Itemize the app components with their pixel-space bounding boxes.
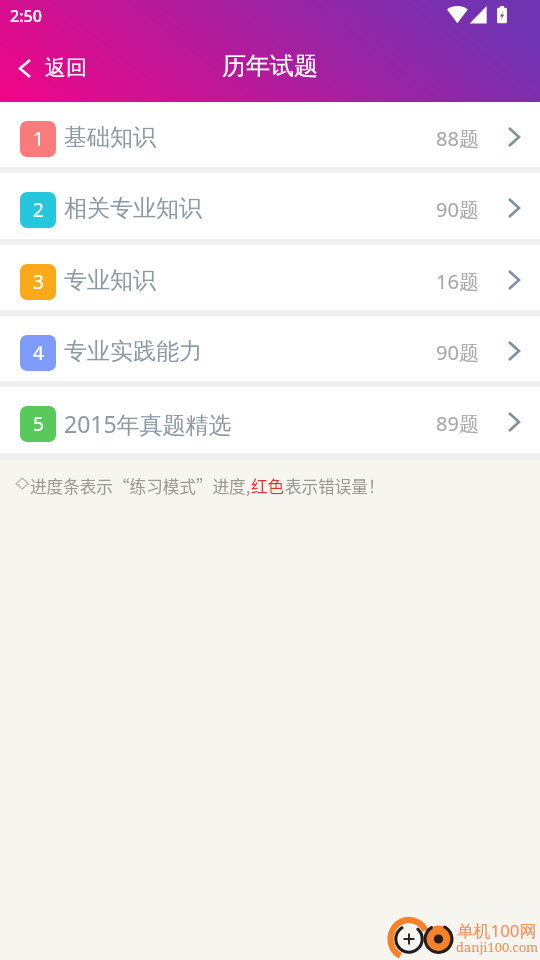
staticText: 89题 bbox=[436, 410, 479, 437]
staticText: 2015年真题精选 bbox=[64, 408, 232, 439]
staticText: 基础知识 bbox=[64, 123, 156, 152]
button[interactable]: 2 bbox=[0, 173, 540, 238]
staticText: 5 bbox=[33, 411, 44, 437]
button[interactable]: 4 bbox=[0, 316, 540, 381]
staticText: 3 bbox=[33, 269, 44, 295]
staticText: 单机100网 bbox=[457, 919, 537, 942]
staticText: 红色 bbox=[251, 474, 285, 498]
staticText: 返回 bbox=[45, 55, 87, 81]
staticText: 88题 bbox=[436, 125, 479, 152]
staticText: 表示错误量！ bbox=[285, 474, 385, 498]
staticText: 2 bbox=[33, 197, 44, 223]
staticText: 16题 bbox=[436, 268, 479, 295]
staticText: 专业知识 bbox=[64, 266, 156, 295]
staticText: 1 bbox=[33, 126, 44, 152]
button[interactable]: 1 bbox=[0, 102, 540, 167]
staticText: 2:50 bbox=[10, 5, 42, 27]
button[interactable]: 返回 Back bbox=[0, 44, 103, 92]
staticText: 进度条表示“练习模式”进度, bbox=[30, 474, 251, 498]
staticText: 4 bbox=[33, 340, 44, 366]
staticText: 90题 bbox=[436, 196, 479, 223]
staticText: 专业实践能力 bbox=[64, 337, 202, 366]
staticText: 历年试题 bbox=[222, 51, 318, 81]
staticText: 相关专业知识 bbox=[64, 194, 202, 223]
button[interactable]: 3 bbox=[0, 245, 540, 310]
staticText: danji100.com bbox=[456, 938, 539, 956]
button[interactable]: 5 bbox=[0, 387, 540, 452]
staticText: 90题 bbox=[436, 339, 479, 366]
